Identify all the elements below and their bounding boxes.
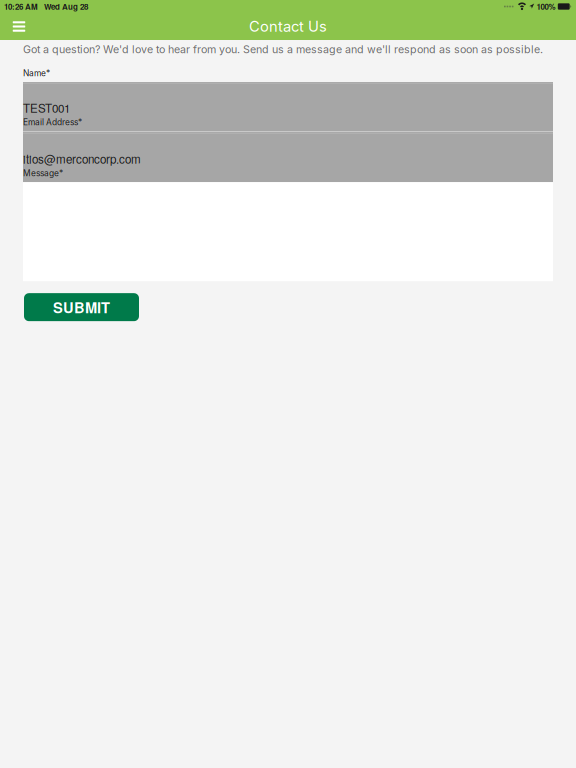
staticText: Email Address* bbox=[23, 117, 82, 127]
staticText: 10:26 AM bbox=[4, 1, 38, 12]
button[interactable]: Menu bbox=[0, 13, 38, 40]
staticText: Name* bbox=[23, 68, 50, 78]
button[interactable]: TEST001 bbox=[23, 82, 553, 131]
staticText: Contact Us bbox=[249, 18, 327, 35]
staticText: TEST001 bbox=[23, 99, 70, 116]
button[interactable]: itios@merconcorp.com bbox=[23, 132, 553, 182]
staticText: 100% bbox=[536, 1, 555, 12]
button[interactable]: SUBMIT bbox=[24, 293, 139, 321]
staticText: Wed Aug 28 bbox=[44, 1, 88, 12]
staticText: itios@merconcorp.com bbox=[23, 150, 141, 167]
staticText: Got a question? We'd love to hear from y… bbox=[23, 43, 543, 56]
staticText: Message* bbox=[23, 168, 63, 178]
staticText: SUBMIT bbox=[53, 297, 110, 318]
